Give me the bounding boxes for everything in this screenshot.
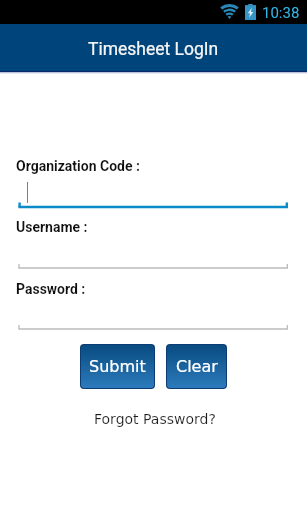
staticText: Password : [16,281,86,297]
button[interactable]: Password [16,297,288,335]
staticText: 10:38 [262,4,300,22]
staticText: Username : [16,219,88,235]
staticText: Submit [89,357,146,376]
staticText: Organization Code : [16,158,140,174]
button[interactable]: Clear [167,345,226,388]
staticText: Timesheet LogIn [88,39,219,60]
staticText: Forgot Password? [94,411,216,427]
button[interactable]: Forgot Password? [94,411,216,427]
staticText: Clear [176,357,218,376]
button[interactable]: Submit [81,345,154,388]
button[interactable]: Organization Code [16,175,288,213]
button[interactable]: Username [16,236,288,274]
